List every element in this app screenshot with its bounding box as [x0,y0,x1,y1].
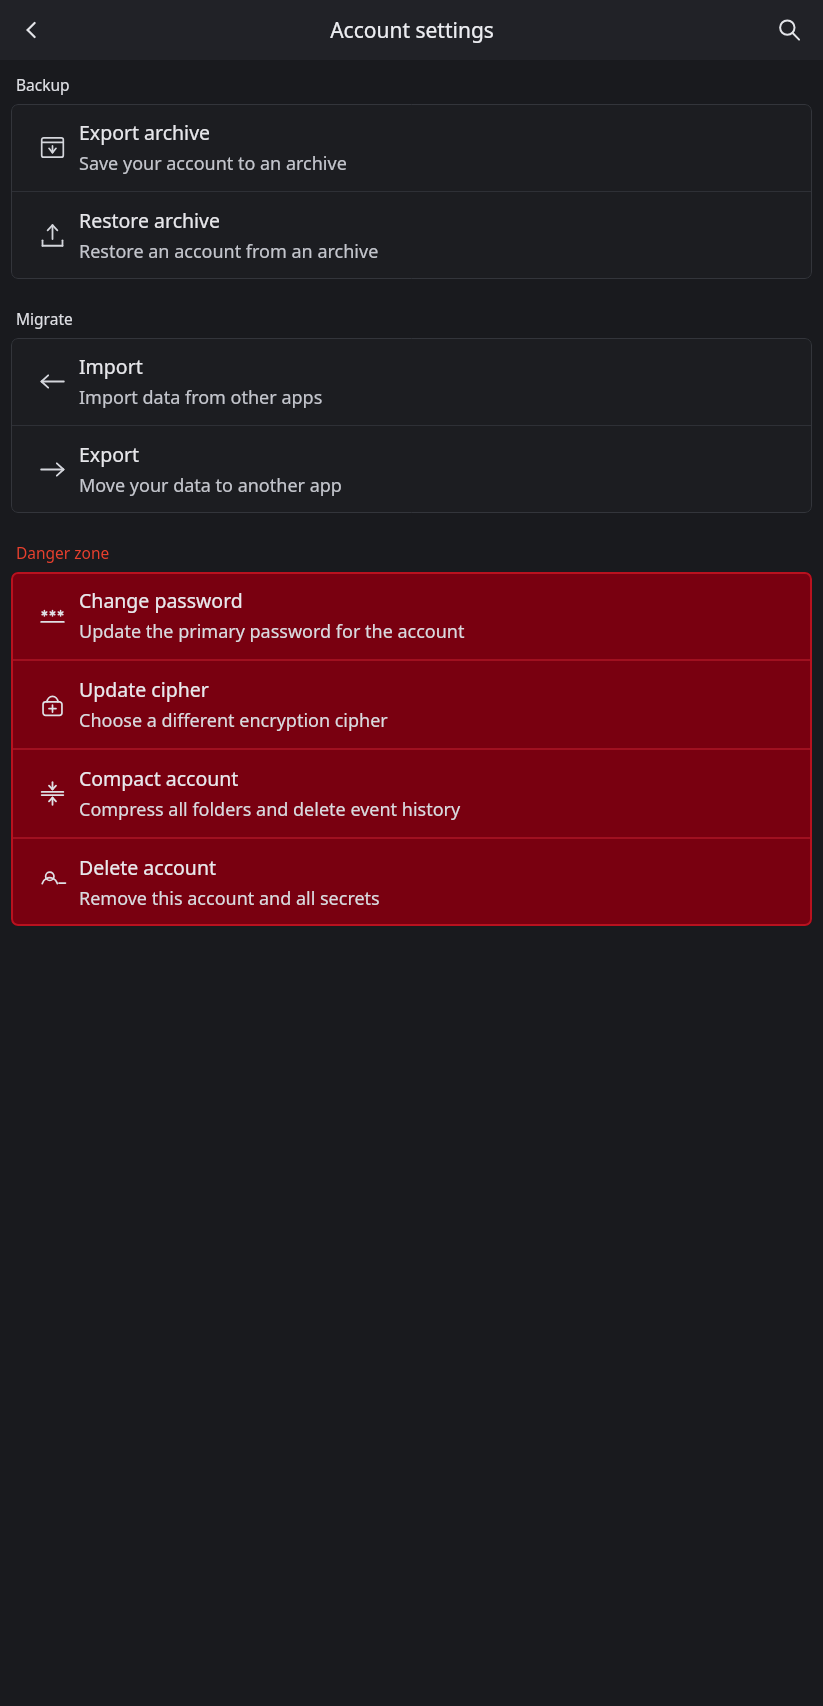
staticText: Restore archive [79,207,220,234]
button[interactable]: Export archive [11,104,812,191]
staticText: Account settings [330,16,494,45]
button[interactable]: Change password [11,572,812,659]
staticText: Update cipher [79,676,209,703]
button[interactable]: Compact account [11,750,812,837]
staticText: Import data from other apps [79,385,323,410]
staticText: Migrate [16,308,73,329]
button[interactable]: Update cipher [11,661,812,748]
staticText: Save your account to an archive [79,151,347,176]
staticText: Export archive [79,119,211,146]
button[interactable]: Export [11,426,812,513]
staticText: Move your data to another app [79,473,342,498]
button[interactable]: Back [8,6,56,54]
button[interactable]: Delete account [11,839,812,926]
staticText: Remove this account and all secrets [79,886,380,911]
staticText: Delete account [79,854,216,881]
staticText: Danger zone [16,542,110,563]
staticText: Compact account [79,765,239,792]
staticText: Choose a different encryption cipher [79,708,388,733]
staticText: Compress all folders and delete event hi… [79,797,461,822]
button[interactable]: Restore archive [11,192,812,279]
staticText: Export [79,441,140,468]
button[interactable]: Search [765,6,813,54]
staticText: Import [79,353,143,380]
staticText: Backup [16,74,70,95]
button[interactable]: Import [11,338,812,425]
staticText: Restore an account from an archive [79,239,379,264]
staticText: Change password [79,587,243,614]
staticText: Update the primary password for the acco… [79,619,465,644]
